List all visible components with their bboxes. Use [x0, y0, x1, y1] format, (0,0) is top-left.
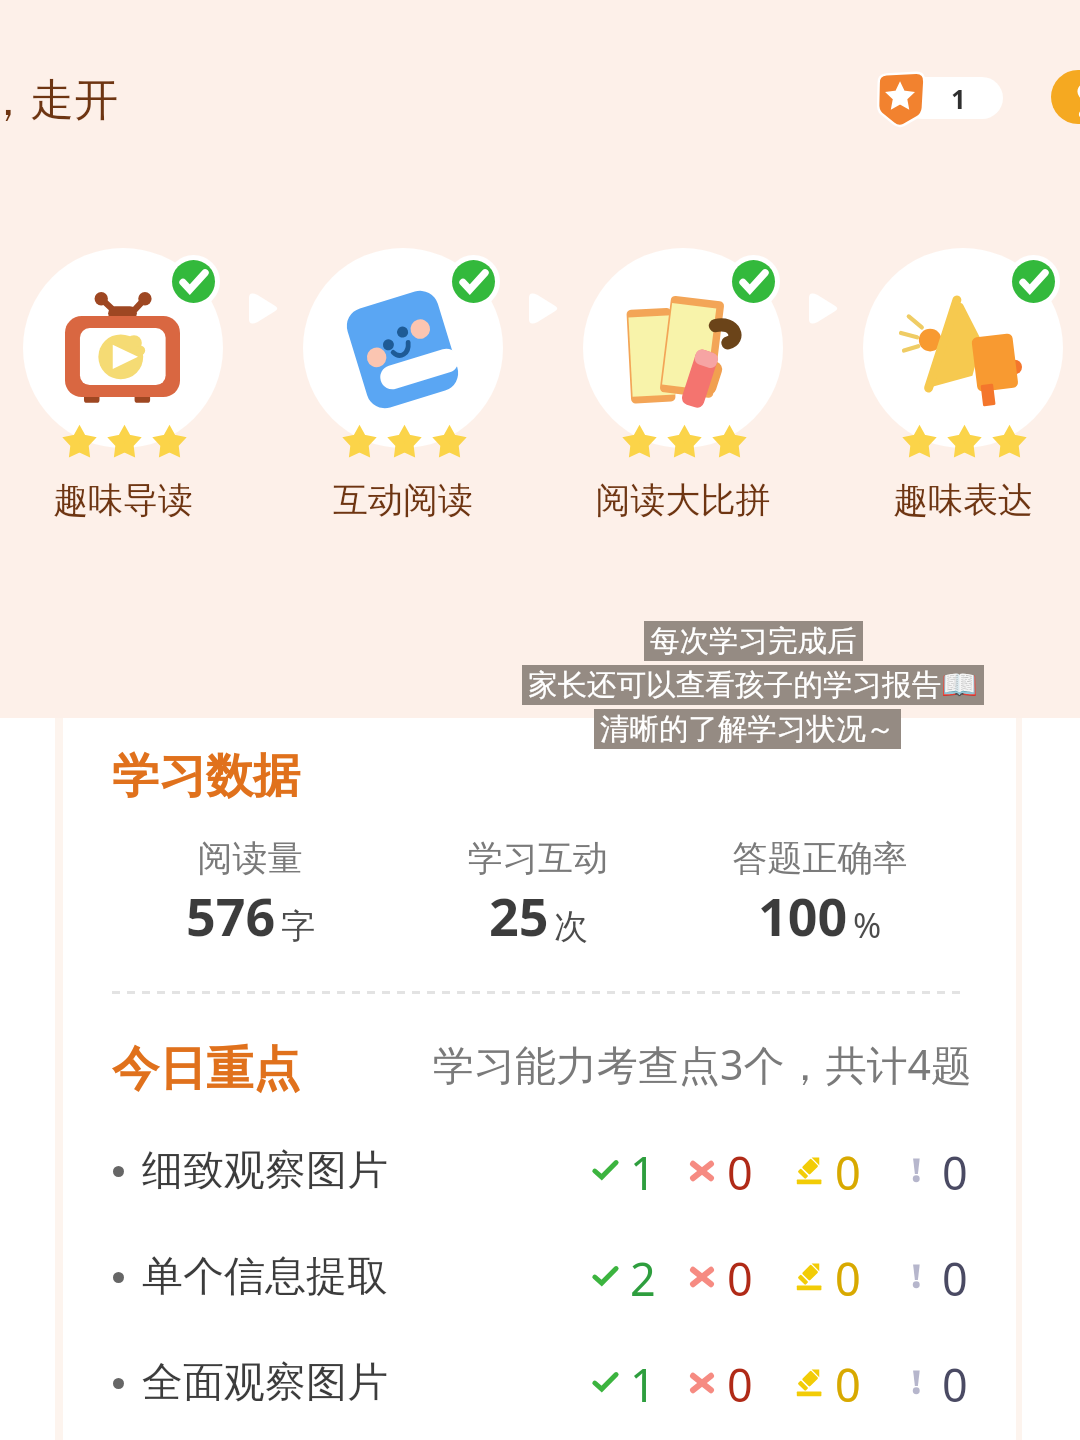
staticText: 0 [835, 1354, 861, 1406]
button[interactable] [298, 245, 508, 525]
staticText: ，走开 [0, 73, 118, 128]
staticText: 576 [186, 880, 276, 951]
button[interactable] [18, 245, 228, 525]
staticText: 趣味表达 [763, 478, 1080, 522]
staticText: 100 [758, 880, 848, 951]
staticText: 0 [727, 1142, 753, 1194]
staticText: % [853, 902, 882, 948]
button[interactable]: 全面观察图片 [58, 1331, 1018, 1435]
staticText: 全面观察图片 [142, 1357, 388, 1409]
staticText: 0 [835, 1142, 861, 1194]
button[interactable] [858, 245, 1068, 525]
button[interactable]: Audio [1051, 70, 1080, 124]
staticText: 每次学习完成后 [650, 623, 857, 660]
staticText: 学习能力考查点3个，共计4题 [433, 1036, 972, 1092]
staticText: 细致观察图片 [142, 1145, 388, 1197]
staticText: 0 [835, 1248, 861, 1300]
button[interactable]: 细致观察图片 [58, 1119, 1018, 1223]
staticText: 今日重点 [112, 1040, 300, 1099]
staticText: 0 [942, 1142, 968, 1194]
staticText: 1 [630, 1354, 656, 1406]
button[interactable]: Stars earned [877, 73, 925, 124]
button[interactable]: 1 [902, 77, 1003, 119]
staticText: 1 [630, 1142, 656, 1194]
staticText: 学习互动 [338, 836, 738, 880]
staticText: 阅读大比拼 [483, 478, 883, 522]
staticText: 趣味导读 [0, 478, 323, 522]
staticText: 字 [281, 905, 315, 948]
staticText: 0 [942, 1354, 968, 1406]
staticText: 0 [727, 1354, 753, 1406]
staticText: 答题正确率 [620, 836, 1020, 880]
staticText: 25 [489, 880, 549, 951]
button[interactable] [578, 245, 788, 525]
staticText: 清晰的了解学习状况～ [600, 711, 895, 748]
staticText: 单个信息提取 [142, 1251, 388, 1303]
staticText: 0 [942, 1248, 968, 1300]
staticText: 互动阅读 [203, 478, 603, 522]
staticText: 家长还可以查看孩子的学习报告📖 [528, 667, 978, 704]
staticText: 1 [951, 81, 966, 116]
staticText: 学习数据 [112, 747, 300, 806]
staticText: 2 [630, 1248, 656, 1300]
staticText: 阅读量 [50, 836, 450, 880]
staticText: 0 [727, 1248, 753, 1300]
button[interactable]: 单个信息提取 [58, 1225, 1018, 1329]
staticText: 次 [554, 905, 588, 948]
